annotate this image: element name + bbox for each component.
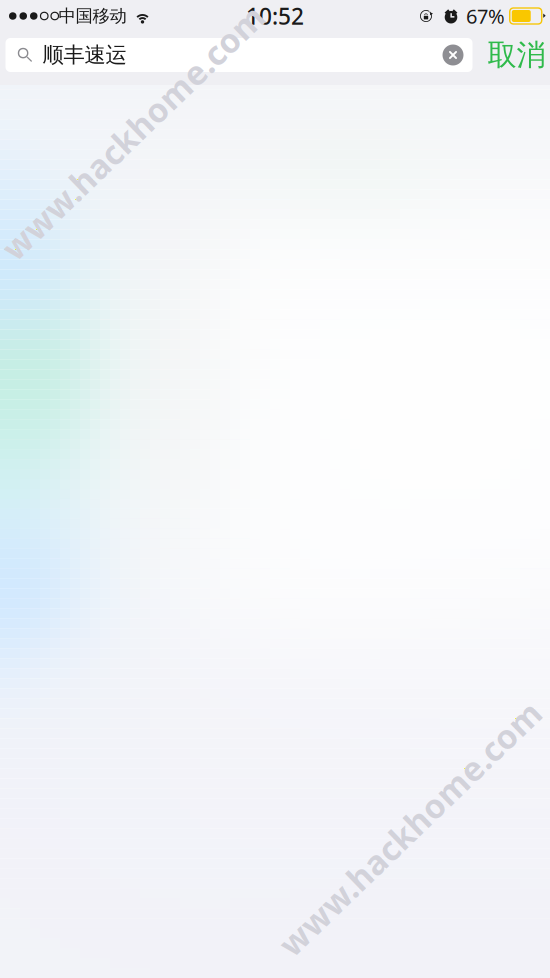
staticText: www.hackhome.com [235,806,550,850]
button[interactable]: Clear search text [434,37,472,72]
button[interactable]: 取消 [472,38,550,72]
staticText: 中国移动 [58,5,126,27]
staticText: 顺丰速运 [42,42,126,68]
staticText: 取消 [487,37,545,73]
staticText: www.hackhome.com [0,110,308,154]
staticText: 67% [466,3,505,29]
staticText: 10:52 [246,1,304,31]
